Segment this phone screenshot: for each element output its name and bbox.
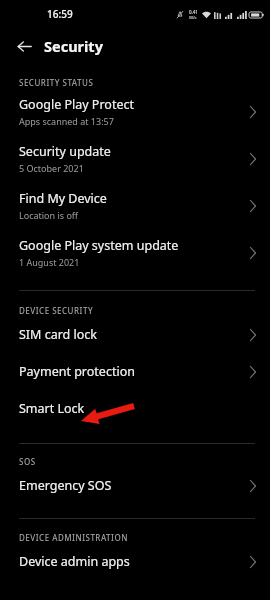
staticText: DEVICE ADMINISTRATION bbox=[19, 532, 128, 543]
staticText: 1 August 2021 bbox=[19, 256, 80, 268]
button[interactable]: SIM card lock bbox=[0, 316, 270, 353]
button[interactable]: Device admin apps bbox=[0, 543, 270, 580]
button[interactable]: Smart Lock bbox=[0, 390, 270, 427]
staticText: SIM card lock bbox=[19, 326, 236, 343]
staticText: Emergency SOS bbox=[19, 477, 236, 494]
staticText: Google Play Protect bbox=[19, 96, 134, 113]
button[interactable]: Emergency SOS bbox=[0, 467, 270, 504]
button[interactable]: Find My Device bbox=[0, 182, 270, 229]
staticText: DEVICE SECURITY bbox=[19, 305, 94, 316]
button[interactable]: Google Play system update bbox=[0, 229, 270, 276]
staticText: Payment protection bbox=[19, 363, 236, 380]
staticText: SOS bbox=[19, 456, 36, 467]
button[interactable]: Payment protection bbox=[0, 353, 270, 390]
staticText: Google Play system update bbox=[19, 237, 179, 254]
staticText: 5 October 2021 bbox=[19, 162, 84, 174]
staticText: Device admin apps bbox=[19, 553, 236, 570]
staticText: KB/s bbox=[189, 15, 197, 20]
staticText: Location is off bbox=[19, 209, 79, 221]
staticText: 0.41 bbox=[189, 9, 198, 15]
staticText: Smart Lock bbox=[19, 400, 236, 417]
staticText: Find My Device bbox=[19, 190, 107, 207]
staticText: Security bbox=[44, 36, 103, 56]
staticText: Apps scanned at 13:57 bbox=[19, 115, 114, 127]
staticText: SECURITY STATUS bbox=[19, 77, 94, 88]
button[interactable]: Google Play Protect bbox=[0, 88, 270, 135]
staticText: 16:59 bbox=[47, 7, 73, 21]
button[interactable]: Security update bbox=[0, 135, 270, 182]
button[interactable]: Back bbox=[11, 33, 37, 59]
staticText: Security update bbox=[19, 143, 111, 160]
